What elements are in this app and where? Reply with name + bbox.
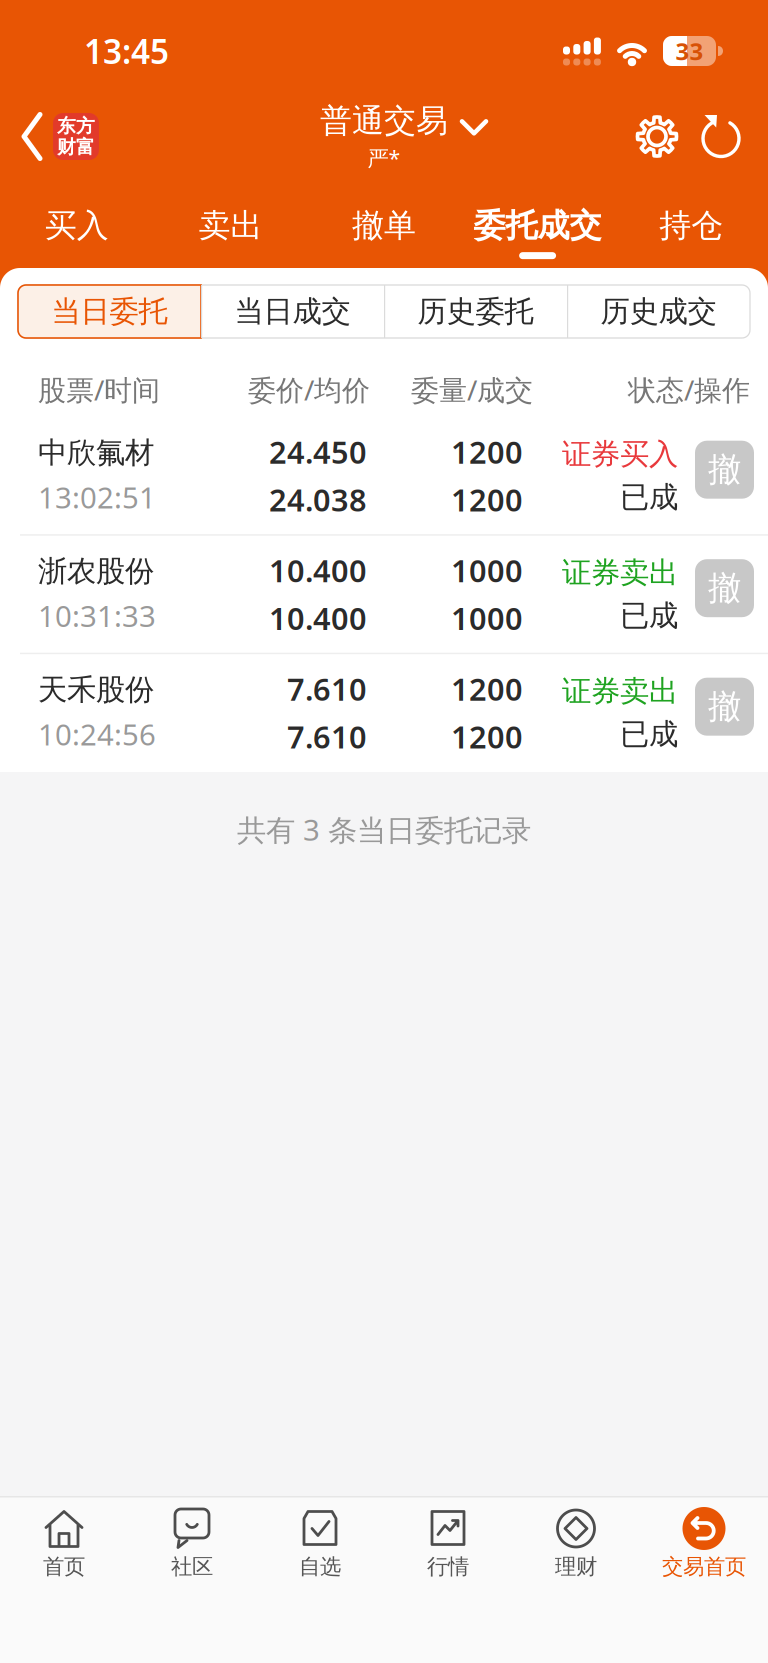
button[interactable]: 刷新 [700,115,742,157]
staticText: 状态/操作 [628,371,750,408]
staticText: 1000 [451,598,523,638]
staticText: 委量/成交 [411,371,533,408]
staticText: 当日委托 [51,293,167,329]
button[interactable]: 返回 [15,112,51,160]
staticText: 严* [367,143,400,172]
staticText: 撤 [708,449,741,490]
staticText: 天禾股份 [38,672,154,708]
staticText: 33 [675,35,703,67]
staticText: 1000 [451,550,523,591]
button[interactable]: 撤单 天禾股份 [695,678,754,736]
button[interactable]: 自选 [256,1506,384,1580]
staticText: 行情 [427,1553,469,1580]
staticText: 中欣氟材 [38,435,154,471]
staticText: 10:31:33 [38,596,156,635]
button[interactable]: 当日成交 [201,285,384,338]
staticText: 自选 [299,1553,341,1580]
staticText: 13:45 [84,29,169,73]
staticText: 10.400 [269,598,367,638]
staticText: 1200 [451,479,523,520]
button[interactable]: 买入 [0,194,154,259]
staticText: 7.610 [287,668,367,709]
staticText: 已成 [620,598,678,634]
button[interactable]: 撤单 浙农股份 [695,559,754,617]
staticText: 10.400 [269,550,367,591]
staticText: 13:02:51 [38,478,156,517]
staticText: 历史成交 [600,293,716,329]
staticText: 财富 [57,135,95,158]
staticText: 理财 [555,1553,597,1580]
button[interactable]: 行情 [384,1506,512,1580]
button[interactable]: 历史成交 [567,285,750,338]
button[interactable]: 撤单 [307,194,461,259]
staticText: 证券卖出 [562,555,678,591]
staticText: 买入 [45,206,109,245]
staticText: 1200 [451,668,523,709]
staticText: 社区 [171,1553,213,1580]
staticText: 证券卖出 [562,673,678,709]
staticText: 10:24:56 [38,715,156,754]
staticText: 24.450 [269,431,367,472]
staticText: 共有 3 条当日委托记录 [237,810,531,849]
staticText: 证券买入 [562,436,678,472]
button[interactable]: 历史委托 [384,285,567,338]
button[interactable]: 卖出 [154,194,307,259]
staticText: 7.610 [287,716,367,757]
staticText: 首页 [43,1553,85,1580]
staticText: 已成 [620,479,678,515]
staticText: 股票/时间 [38,371,160,408]
staticText: 浙农股份 [38,553,154,589]
staticText: 1200 [451,431,523,472]
staticText: 撤 [708,568,741,609]
staticText: 当日成交 [234,293,350,329]
staticText: 委托成交 [474,206,602,245]
button[interactable]: 设置 [634,113,680,159]
button[interactable]: 首页 [0,1506,128,1580]
button[interactable]: 理财 [512,1506,640,1580]
staticText: 已成 [620,716,678,752]
button[interactable]: 切换交易账户 [320,101,448,172]
staticText: 普通交易 [320,101,448,140]
staticText: 撤单 [352,206,416,245]
staticText: 1200 [451,716,523,757]
staticText: 历史委托 [417,293,533,329]
button[interactable]: 社区 [128,1506,256,1580]
button[interactable]: 交易首页 [640,1506,768,1580]
staticText: 卖出 [198,206,262,245]
staticText: 委价/均价 [248,371,370,408]
button[interactable]: 委托成交 [461,194,614,259]
staticText: 撤 [708,686,741,727]
staticText: 24.038 [269,479,367,520]
staticText: 东方 [57,115,95,137]
button[interactable]: 当日委托 [18,285,201,338]
staticText: 持仓 [659,206,723,245]
staticText: 交易首页 [662,1553,746,1580]
button[interactable]: 持仓 [614,194,768,259]
button[interactable]: 撤单 中欣氟材 [695,441,754,499]
